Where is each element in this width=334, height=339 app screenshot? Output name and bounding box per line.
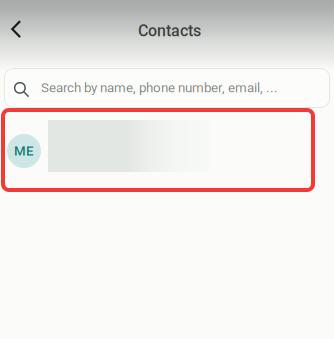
button[interactable]: Search by name, phone number, email, ...	[4, 68, 330, 108]
staticText: ME	[14, 143, 34, 159]
button[interactable]: Back	[0, 12, 33, 46]
button[interactable]: ME	[1, 108, 315, 192]
staticText: Contacts	[138, 21, 201, 40]
staticText: Search by name, phone number, email, ...	[41, 80, 278, 96]
